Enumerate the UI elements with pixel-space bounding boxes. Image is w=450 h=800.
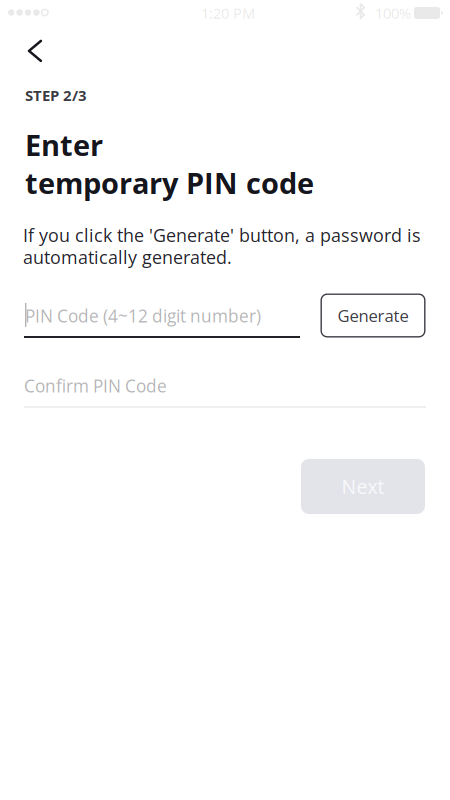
staticText: temporary PIN code — [25, 163, 314, 202]
staticText: STEP 2/3 — [25, 85, 87, 105]
button[interactable]: Back — [11, 27, 60, 74]
staticText: Enter — [25, 125, 103, 164]
staticText: 100% — [375, 3, 411, 23]
button[interactable]: Next — [301, 459, 425, 514]
staticText: PIN Code (4~12 digit number) — [25, 304, 261, 327]
staticText: Generate — [337, 304, 408, 327]
staticText: If you click the 'Generate' button, a pa… — [23, 223, 421, 247]
staticText: automatically generated. — [23, 245, 232, 269]
button[interactable]: Generate — [320, 293, 425, 337]
staticText: 1:20 PM — [201, 3, 255, 23]
staticText: Confirm PIN Code — [24, 374, 167, 397]
staticText: Next — [341, 473, 384, 500]
